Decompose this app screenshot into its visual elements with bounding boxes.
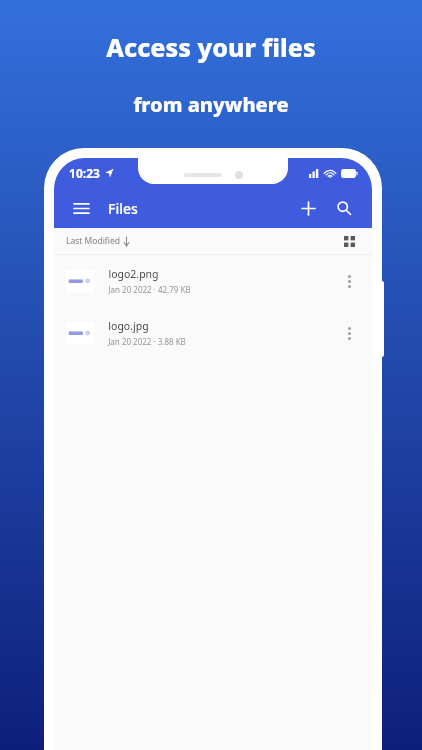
staticText: Access your files	[106, 30, 316, 64]
staticText: Last Modified	[66, 235, 120, 247]
staticText: Files	[108, 199, 138, 218]
staticText: logo2.png	[108, 267, 159, 281]
button[interactable]: More options	[336, 320, 362, 346]
button[interactable]: Menu	[68, 195, 94, 221]
button[interactable]: Add	[294, 194, 322, 222]
staticText: from anywhere	[133, 91, 289, 118]
button[interactable]: More options	[336, 268, 362, 294]
button[interactable]: logo2.png	[54, 255, 372, 307]
button[interactable]: Grid view	[338, 230, 360, 252]
button[interactable]: logo.jpg	[54, 307, 372, 359]
staticText: logo.jpg	[108, 319, 149, 333]
staticText: 10:23	[69, 165, 100, 181]
button[interactable]: Search	[330, 194, 358, 222]
button[interactable]: Last Modified	[66, 235, 130, 247]
staticText: Jan 20 2022 · 3.88 KB	[108, 336, 186, 347]
staticText: Jan 20 2022 · 42.79 KB	[108, 284, 191, 295]
